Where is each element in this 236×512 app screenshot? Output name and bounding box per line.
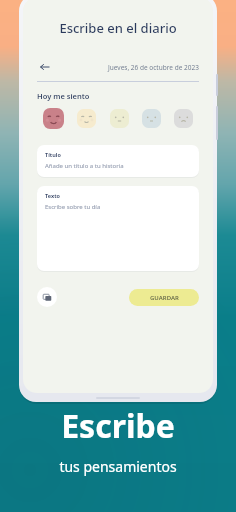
staticText: Añade un título a tu historia	[45, 162, 124, 170]
staticText: Escribe en el diario	[23, 19, 213, 37]
button[interactable]: Back	[37, 59, 53, 75]
button[interactable]: Texto	[37, 186, 199, 271]
button[interactable]: Mood NEUTRAL	[110, 109, 129, 128]
button[interactable]: Mood HAPPY	[43, 108, 64, 129]
staticText: Escribe	[61, 404, 175, 448]
staticText: Texto	[45, 192, 60, 199]
staticText: Escribe sobre tu día	[45, 203, 101, 211]
staticText: Título	[45, 151, 61, 158]
staticText: tus pensamientos	[59, 457, 177, 476]
button[interactable]: GUARDAR	[129, 289, 199, 306]
staticText: GUARDAR	[150, 294, 179, 302]
button[interactable]: Mood FLAT	[142, 109, 161, 128]
button[interactable]: Mood SAD	[174, 109, 193, 128]
button[interactable]: Add image	[37, 287, 57, 307]
staticText: Hoy me siento	[37, 91, 90, 101]
staticText: Jueves, 26 de octubre de 2023	[108, 63, 199, 72]
button[interactable]: Mood SMILE	[77, 109, 96, 128]
button[interactable]: Título	[37, 145, 199, 177]
